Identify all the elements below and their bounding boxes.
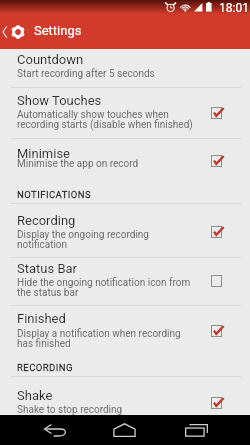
staticText: Minimise the app on record: [17, 158, 139, 170]
staticText: Status Bar: [17, 261, 77, 276]
staticText: Shake: [17, 388, 53, 403]
staticText: Shake to stop recording: [17, 404, 123, 416]
staticText: RECORDING: [17, 362, 73, 373]
button[interactable]: [0, 258, 250, 305]
staticText: NOTIFICATIONS: [17, 189, 92, 200]
button[interactable]: Enabled: [205, 391, 228, 414]
staticText: Display a notification when recording: [17, 328, 181, 340]
staticText: 18:01: [219, 1, 249, 15]
button[interactable]: [0, 88, 250, 138]
button[interactable]: [0, 377, 250, 415]
button[interactable]: [0, 50, 250, 88]
staticText: recording starts (disable when finished): [17, 119, 193, 131]
button[interactable]: [0, 204, 250, 257]
button[interactable]: Disabled: [205, 269, 228, 292]
staticText: notification: [17, 239, 68, 251]
button[interactable]: Home: [94, 415, 154, 445]
staticText: Display the ongoing recording: [17, 229, 149, 241]
staticText: Countdown: [17, 52, 84, 67]
staticText: Finished: [17, 311, 66, 326]
button[interactable]: Enabled: [205, 149, 228, 172]
button[interactable]: [0, 306, 250, 355]
staticText: Show Touches: [17, 93, 102, 108]
button[interactable]: [0, 139, 250, 180]
staticText: Recording: [17, 213, 76, 228]
button[interactable]: Navigate up: [2, 14, 25, 49]
staticText: Start recording after 5 seconds: [17, 68, 155, 80]
button[interactable]: Enabled: [205, 101, 228, 124]
staticText: Automatically show touches when: [17, 109, 169, 121]
staticText: Hide the ongoing notification icon from: [17, 277, 191, 289]
staticText: Settings: [34, 23, 82, 38]
button[interactable]: Back: [25, 415, 85, 445]
button[interactable]: Enabled: [205, 220, 228, 243]
staticText: Minimise: [17, 146, 71, 161]
staticText: has finished: [17, 338, 71, 350]
staticText: the status bar: [17, 287, 79, 299]
button[interactable]: Recent apps: [166, 415, 226, 445]
button[interactable]: Enabled: [205, 319, 228, 342]
